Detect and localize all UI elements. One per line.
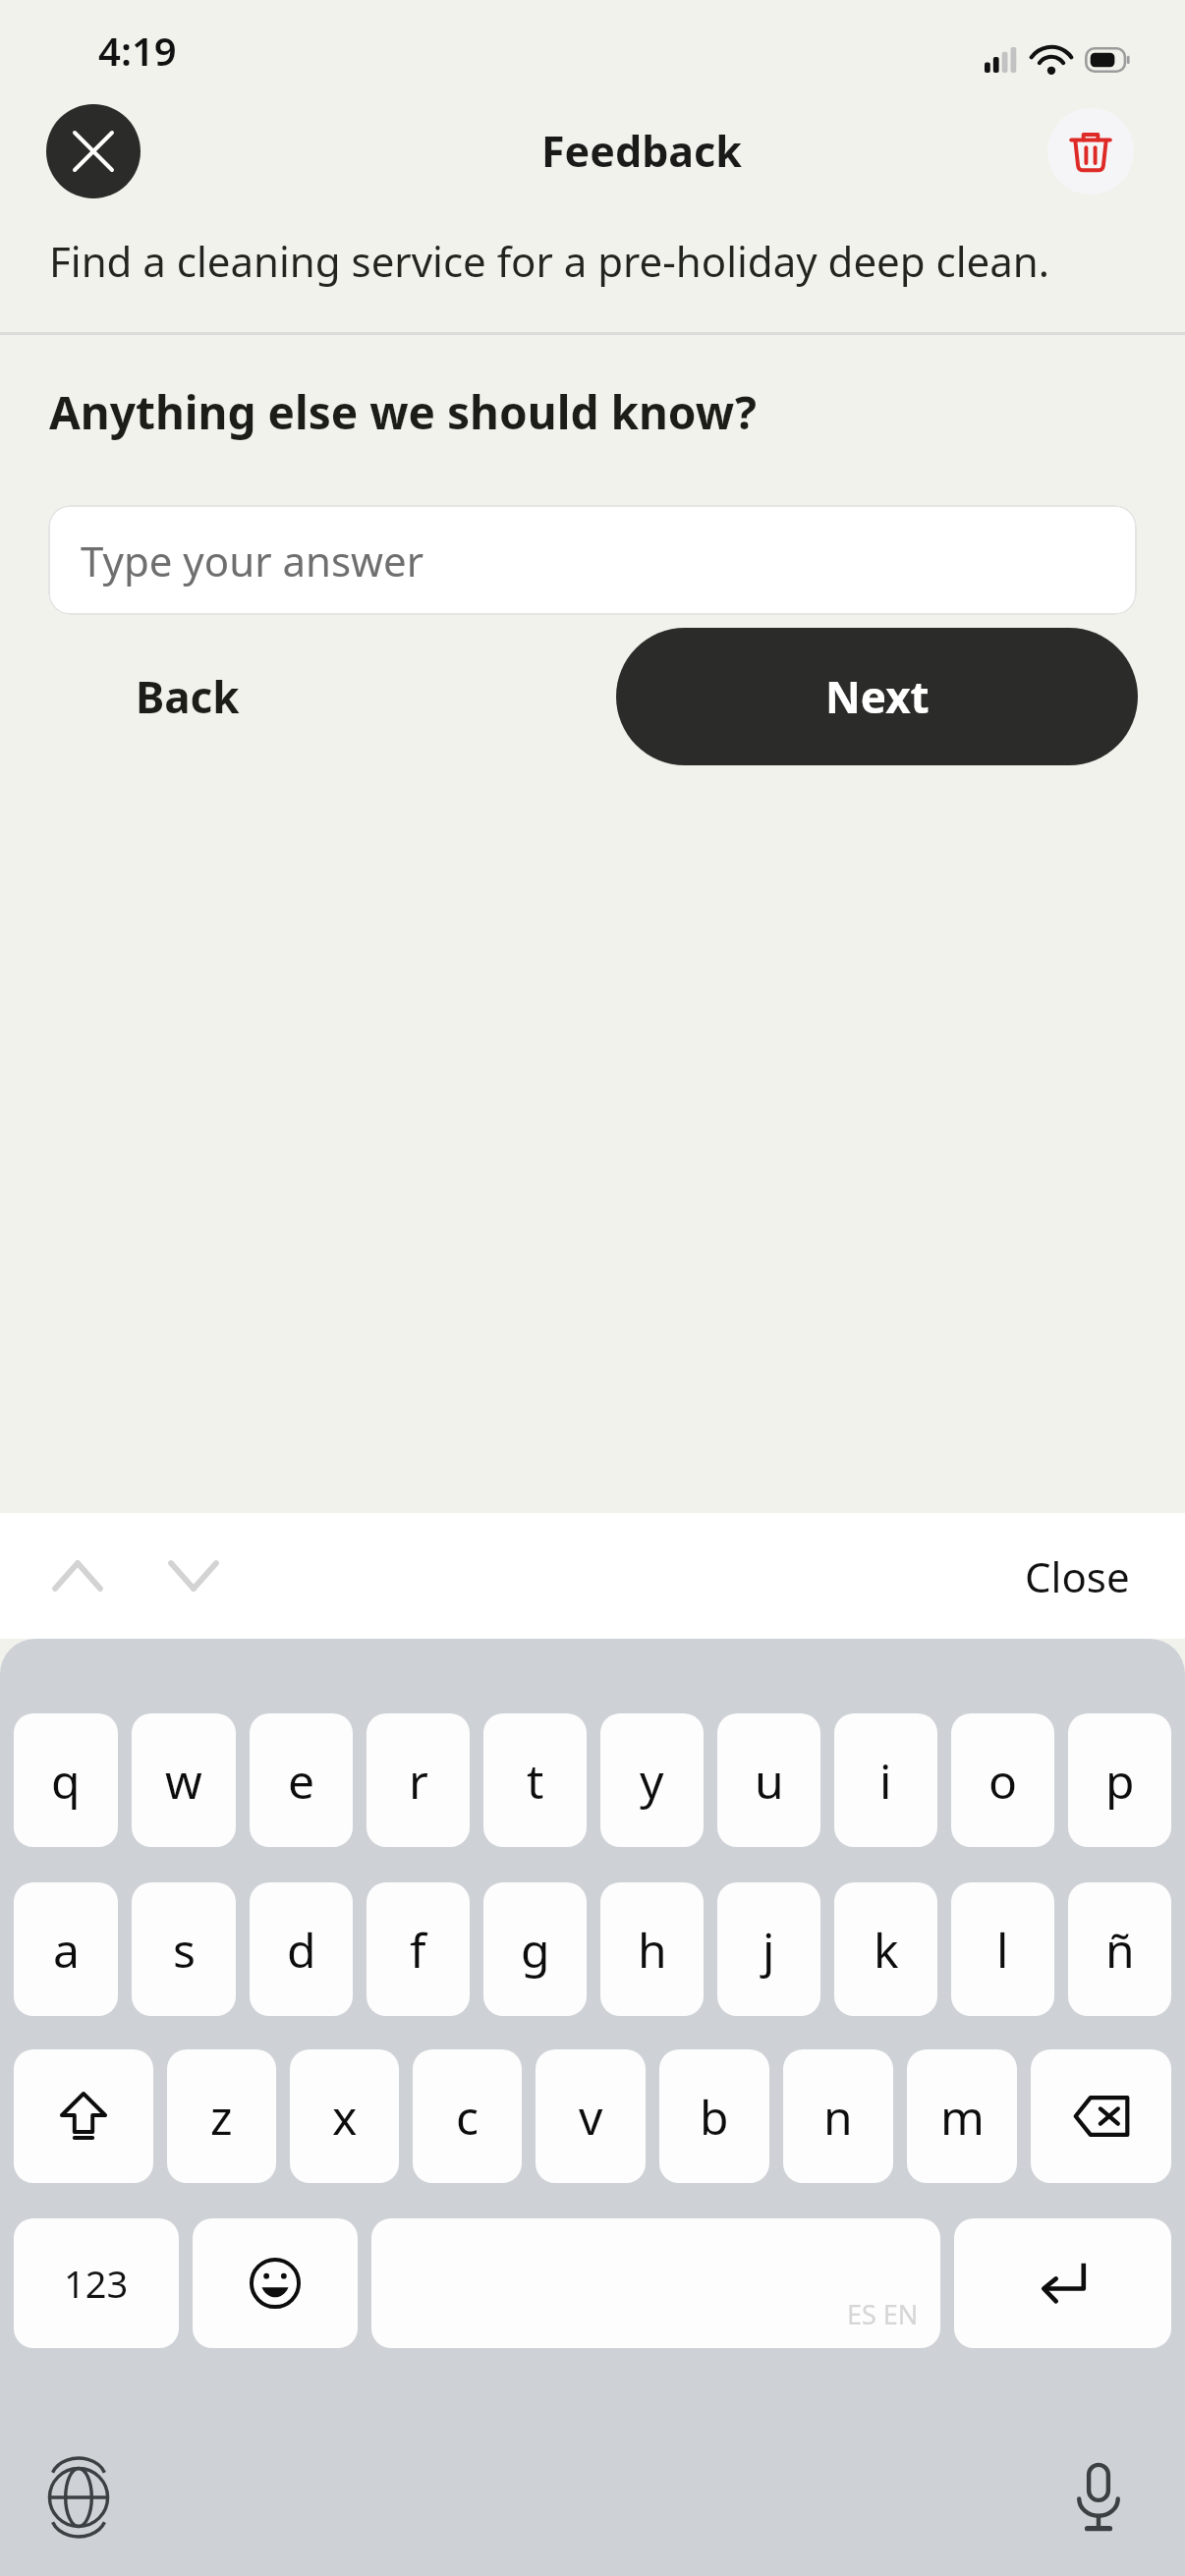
button[interactable]: Emoji — [193, 2218, 358, 2348]
button[interactable]: e — [250, 1713, 353, 1847]
staticText: q — [51, 1749, 81, 1813]
button[interactable]: v — [536, 2049, 646, 2183]
staticText: p — [1105, 1749, 1135, 1813]
button[interactable]: q — [14, 1713, 118, 1847]
staticText: d — [287, 1918, 316, 1982]
button[interactable]: 123 — [14, 2218, 179, 2348]
button[interactable]: d — [250, 1882, 353, 2016]
staticText: t — [527, 1749, 544, 1813]
staticText: n — [823, 2085, 853, 2149]
staticText: h — [638, 1918, 667, 1982]
staticText: j — [762, 1918, 775, 1982]
button[interactable]: j — [717, 1882, 820, 2016]
button[interactable]: k — [834, 1882, 937, 2016]
button[interactable]: r — [367, 1713, 470, 1847]
staticText: x — [332, 2085, 358, 2149]
button[interactable]: x — [290, 2049, 399, 2183]
staticText: r — [409, 1749, 428, 1813]
other: Emoji — [250, 2258, 301, 2309]
staticText: Feedback — [541, 122, 742, 180]
button[interactable]: g — [483, 1882, 587, 2016]
other: Return — [1038, 2261, 1089, 2306]
button[interactable]: Next field — [155, 1538, 232, 1614]
button[interactable]: Shift — [14, 2049, 153, 2183]
staticText: Next — [825, 667, 930, 726]
button[interactable]: Return — [954, 2218, 1171, 2348]
staticText: l — [996, 1918, 1009, 1982]
button[interactable]: a — [14, 1882, 118, 2016]
button[interactable]: u — [717, 1713, 820, 1847]
button[interactable]: h — [600, 1882, 704, 2016]
staticText: e — [288, 1749, 315, 1813]
button[interactable]: w — [132, 1713, 236, 1847]
button[interactable]: Delete — [1047, 108, 1134, 195]
staticText: m — [940, 2085, 985, 2149]
staticText: u — [755, 1749, 784, 1813]
staticText: i — [879, 1749, 892, 1813]
staticText: f — [410, 1918, 426, 1982]
staticText: y — [640, 1749, 664, 1813]
button[interactable]: ñ — [1068, 1882, 1171, 2016]
button[interactable]: b — [659, 2049, 769, 2183]
staticText: 123 — [64, 2258, 129, 2309]
staticText: Close — [1025, 1548, 1130, 1604]
staticText: Anything else we should know? — [49, 381, 757, 443]
button[interactable]: Backspace — [1031, 2049, 1171, 2183]
button[interactable]: Close — [46, 104, 141, 198]
button[interactable]: s — [132, 1882, 236, 2016]
staticText: ES EN — [847, 2296, 919, 2332]
button[interactable]: m — [907, 2049, 1017, 2183]
other: Shift — [61, 2092, 106, 2141]
button[interactable]: c — [413, 2049, 522, 2183]
button[interactable]: p — [1068, 1713, 1171, 1847]
button[interactable]: Previous field — [39, 1538, 116, 1614]
staticText: 4:19 — [98, 24, 177, 77]
button[interactable]: t — [483, 1713, 587, 1847]
staticText: g — [521, 1918, 550, 1982]
staticText: Back — [136, 667, 240, 726]
button[interactable]: Type your answer — [48, 505, 1137, 615]
staticText: k — [874, 1918, 899, 1982]
staticText: w — [165, 1749, 202, 1813]
button[interactable]: Change keyboard language — [33, 2452, 124, 2543]
button[interactable]: Space — [371, 2218, 940, 2348]
staticText: b — [700, 2085, 729, 2149]
staticText: ñ — [1105, 1918, 1135, 1982]
staticText: o — [988, 1749, 1018, 1813]
staticText: s — [173, 1918, 196, 1982]
button[interactable]: Next — [616, 628, 1138, 765]
button[interactable]: Voice input — [1053, 2452, 1144, 2543]
button[interactable]: l — [951, 1882, 1054, 2016]
staticText: a — [53, 1918, 80, 1982]
button[interactable]: i — [834, 1713, 937, 1847]
staticText: v — [579, 2085, 603, 2149]
button[interactable]: n — [783, 2049, 893, 2183]
staticText: Find a cleaning service for a pre-holida… — [49, 233, 1092, 289]
button[interactable]: o — [951, 1713, 1054, 1847]
button[interactable]: f — [367, 1882, 470, 2016]
button[interactable]: y — [600, 1713, 704, 1847]
button[interactable]: z — [167, 2049, 276, 2183]
button[interactable]: Back — [136, 667, 240, 726]
staticText: c — [456, 2085, 480, 2149]
button[interactable]: Close — [1025, 1548, 1130, 1604]
staticText: z — [210, 2085, 233, 2149]
other: Backspace — [1074, 2096, 1129, 2137]
staticText: Type your answer — [81, 532, 424, 588]
